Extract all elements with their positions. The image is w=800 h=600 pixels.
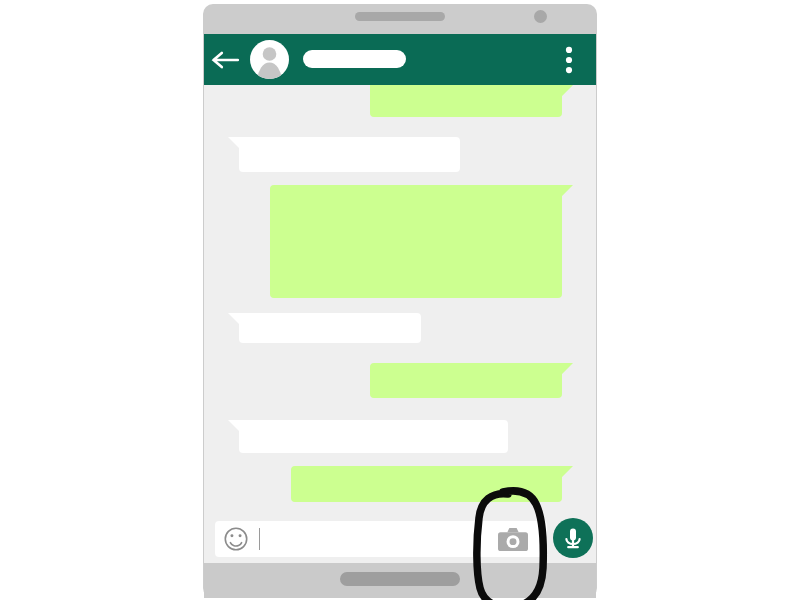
button[interactable]: Received message [228, 313, 421, 343]
button[interactable]: Message input [215, 521, 547, 557]
button[interactable]: Received message [228, 137, 460, 172]
button[interactable]: Sent message [370, 85, 573, 117]
button[interactable]: Back [209, 44, 241, 76]
button[interactable]: Emoji [224, 527, 248, 551]
button[interactable]: Voice message [553, 518, 593, 558]
button[interactable]: Sent message [270, 185, 573, 298]
button[interactable]: Contact name [303, 50, 406, 68]
button[interactable]: Home [340, 572, 460, 586]
button[interactable]: Contact avatar [250, 40, 289, 79]
button[interactable] [204, 34, 596, 85]
button[interactable]: Sent message [370, 363, 573, 398]
button[interactable]: Camera [498, 527, 528, 551]
button[interactable]: Sent message [291, 466, 573, 502]
button[interactable]: More options [553, 42, 585, 78]
